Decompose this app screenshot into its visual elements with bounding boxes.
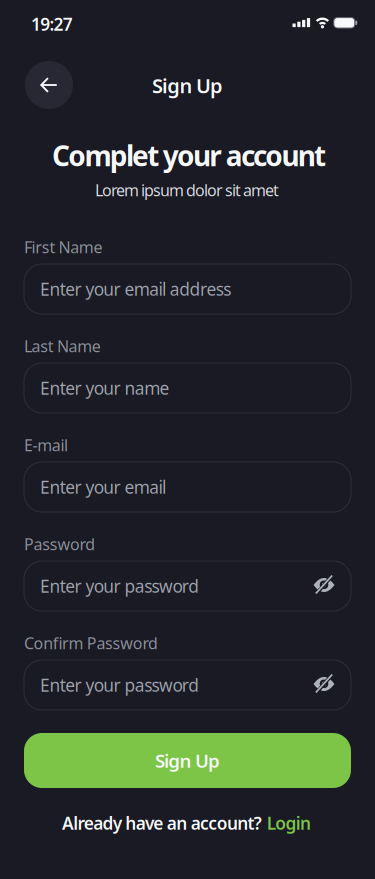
staticText: E-mail xyxy=(24,434,68,456)
staticText: Sign Up xyxy=(155,748,220,773)
button[interactable]: Enter your password xyxy=(24,561,351,611)
staticText: Sign Up xyxy=(152,72,223,99)
staticText: Complet your account xyxy=(52,137,326,174)
button[interactable]: Enter your email xyxy=(24,462,351,512)
staticText: Enter your email address xyxy=(40,277,231,300)
staticText: Enter your password xyxy=(40,673,199,696)
button[interactable]: Sign Up xyxy=(24,733,351,788)
staticText: Confirm Password xyxy=(24,632,158,654)
staticText: Already have an account? xyxy=(62,811,262,834)
button[interactable]: Login xyxy=(62,811,311,834)
staticText: Enter your name xyxy=(40,376,170,399)
button[interactable]: Back xyxy=(25,61,73,109)
staticText: Last Name xyxy=(24,335,101,357)
staticText: Enter your email xyxy=(40,475,166,498)
button[interactable]: Enter your password xyxy=(24,660,351,710)
staticText: First Name xyxy=(24,236,102,258)
staticText: Enter your password xyxy=(40,574,199,597)
staticText: 19:27 xyxy=(31,12,73,35)
button[interactable]: Show password xyxy=(313,576,335,593)
staticText: Lorem ipsum dolor sit amet xyxy=(95,179,279,201)
button[interactable]: Show password xyxy=(313,675,335,692)
button[interactable]: Enter your email address xyxy=(24,264,351,314)
staticText: Password xyxy=(24,533,95,555)
staticText: Login xyxy=(267,811,311,834)
button[interactable]: Enter your name xyxy=(24,363,351,413)
